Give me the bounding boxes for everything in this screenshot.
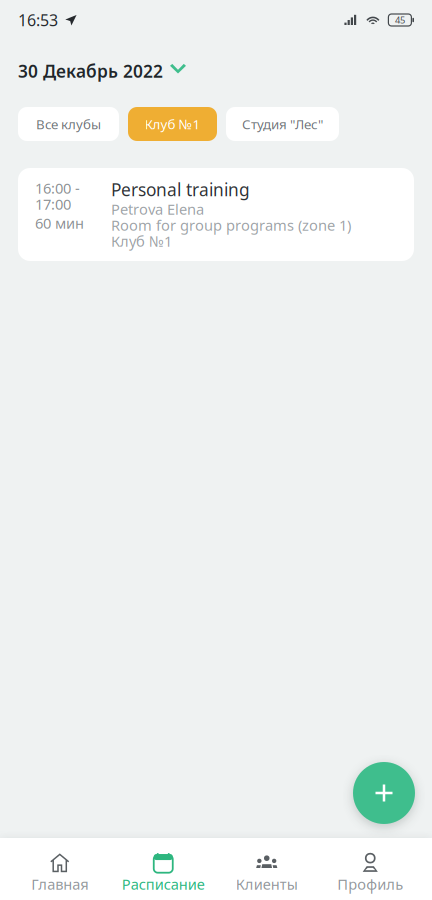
staticText: Студия "Лес" (242, 115, 323, 133)
staticText: 60 мин (35, 213, 84, 233)
button[interactable]: Add (353, 762, 415, 824)
staticText: Профиль (337, 874, 403, 894)
staticText: Расписание (122, 874, 205, 894)
button[interactable]: 16:00 - (18, 168, 414, 261)
staticText: Petrova Elena (111, 199, 204, 219)
staticText: 17:00 (35, 194, 71, 214)
staticText: Personal training (111, 178, 250, 201)
staticText: Room for group programs (zone 1) (111, 215, 351, 235)
button[interactable]: Клуб №1 (128, 107, 217, 141)
button[interactable]: Студия "Лес" (226, 107, 339, 141)
button[interactable]: Клиенты (215, 838, 318, 900)
staticText: Главная (31, 874, 88, 894)
staticText: Все клубы (36, 115, 101, 133)
button[interactable]: Профиль (318, 838, 422, 900)
staticText: 45 (395, 14, 405, 26)
button[interactable]: 30 Декабрь 2022 (18, 56, 186, 86)
staticText: 16:53 (18, 9, 58, 31)
staticText: Клуб №1 (111, 231, 172, 251)
staticText: 30 Декабрь 2022 (18, 59, 163, 82)
button[interactable]: Все клубы (18, 107, 119, 141)
staticText: Клуб №1 (144, 115, 200, 133)
button[interactable]: Расписание (111, 838, 215, 900)
staticText: 16:00 - (35, 178, 80, 198)
button[interactable]: Главная (8, 838, 111, 900)
staticText: Клиенты (236, 874, 298, 894)
